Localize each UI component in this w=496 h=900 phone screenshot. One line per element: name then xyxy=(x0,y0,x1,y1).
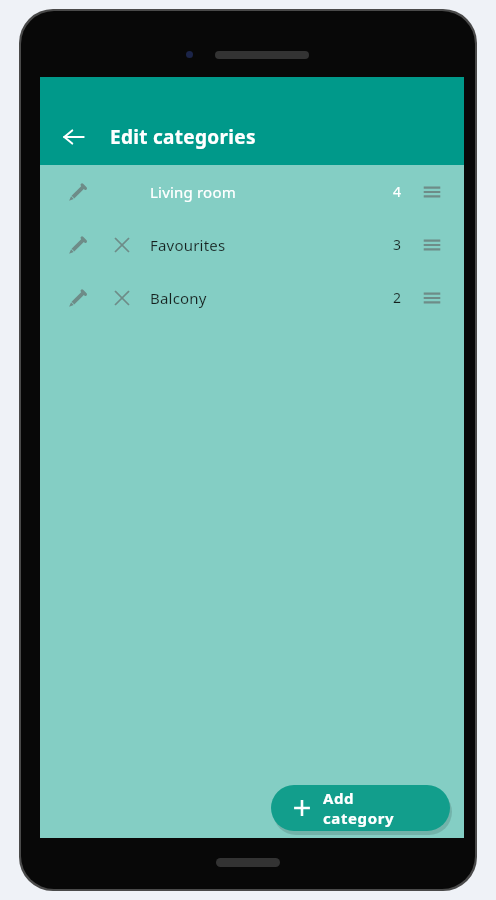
button[interactable]: Add category xyxy=(271,785,450,831)
button[interactable]: Delete Favourites xyxy=(106,229,138,261)
staticText: Living room xyxy=(150,182,236,202)
button[interactable]: Edit Living room xyxy=(40,165,464,218)
button[interactable]: Edit Living room xyxy=(60,175,94,209)
staticText: Edit categories xyxy=(110,124,256,150)
button[interactable]: Reorder Balcony xyxy=(416,282,448,314)
button[interactable]: Back xyxy=(52,115,96,159)
button[interactable]: Reorder Favourites xyxy=(416,229,448,261)
button[interactable]: Edit Favourites xyxy=(40,218,464,271)
staticText: Balcony xyxy=(150,288,207,308)
button[interactable]: Edit Favourites xyxy=(60,228,94,262)
button[interactable]: Reorder Living room xyxy=(416,176,448,208)
button[interactable]: Delete Balcony xyxy=(106,282,138,314)
staticText: 2 xyxy=(393,288,402,307)
button[interactable]: Edit Balcony xyxy=(60,281,94,315)
staticText: Favourites xyxy=(150,235,226,255)
staticText: Add category xyxy=(323,788,428,828)
button[interactable]: Edit Balcony xyxy=(40,271,464,324)
staticText: 3 xyxy=(393,235,402,254)
staticText: 4 xyxy=(393,182,402,201)
